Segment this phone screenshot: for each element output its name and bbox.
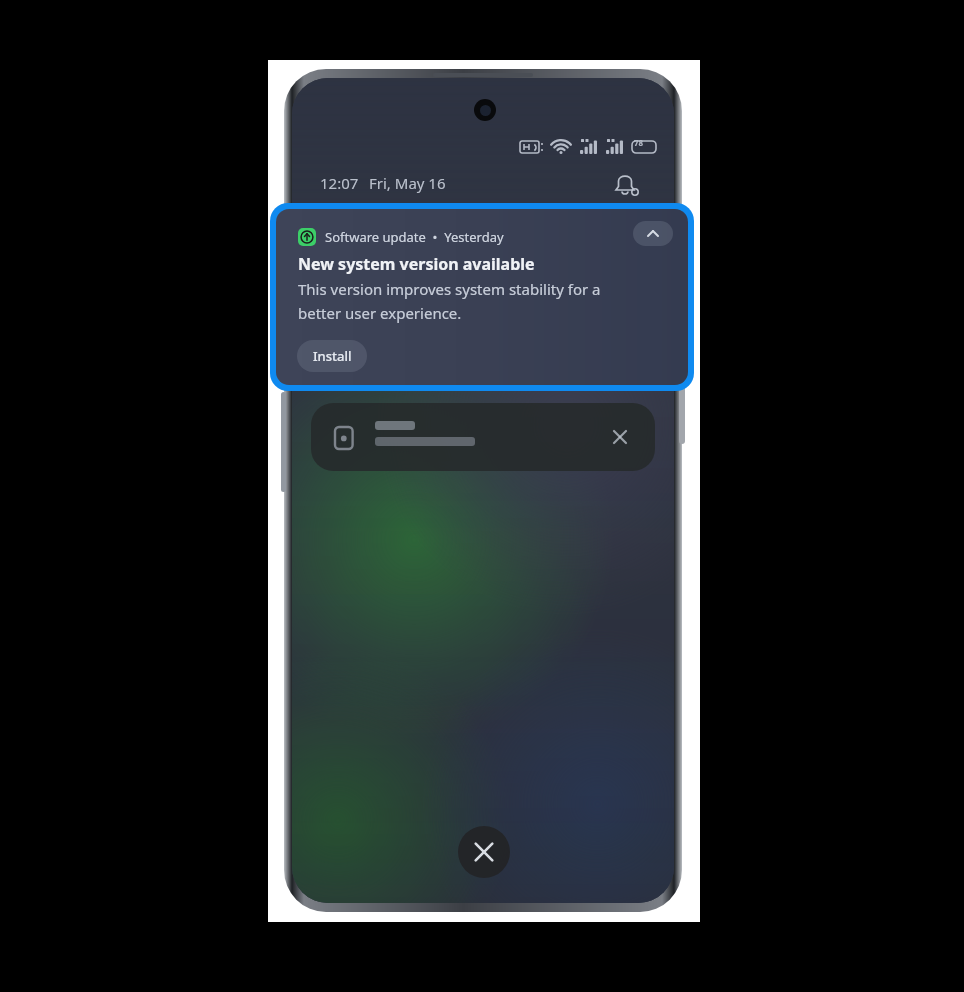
button[interactable]: Install: [297, 340, 367, 372]
staticText: Fri, May 16: [369, 173, 446, 193]
button[interactable]: Dismiss notification: [311, 403, 655, 471]
button[interactable]: Close notification panel: [458, 826, 510, 878]
staticText: 12:07: [320, 173, 359, 193]
button[interactable]: Software update • Yesterday: [276, 209, 688, 385]
staticText: Software update • Yesterday: [325, 228, 504, 246]
staticText: New system version available: [298, 253, 535, 275]
staticText: This version improves system stability f…: [298, 279, 601, 299]
button[interactable]: Dismiss notification: [605, 422, 635, 452]
staticText: better user experience.: [298, 303, 462, 323]
staticText: Install: [313, 347, 352, 365]
button[interactable]: Collapse notification: [633, 221, 673, 246]
button[interactable]: Notification settings: [610, 168, 644, 200]
staticText: 78: [634, 137, 644, 148]
